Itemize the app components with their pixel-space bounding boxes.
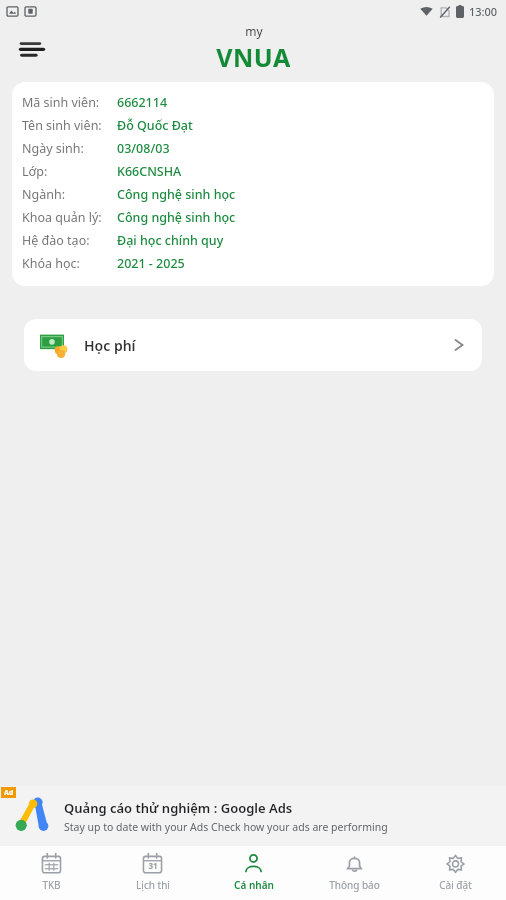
staticText: Quảng cáo thử nghiệm : Google Ads [64, 799, 293, 817]
staticText: Stay up to date with your Ads Check how … [64, 820, 388, 834]
staticText: K66CNSHA [117, 163, 182, 180]
staticText: Ad [4, 788, 14, 798]
staticText: Khoa quản lý: [22, 209, 102, 226]
staticText: 13:00 [469, 4, 498, 19]
staticText: Lớp: [22, 163, 48, 180]
button[interactable]: 31 [102, 846, 203, 900]
staticText: 6662114 [117, 94, 168, 111]
button[interactable]: TKB [0, 846, 102, 900]
button[interactable]: Học phí [24, 319, 482, 371]
button[interactable]: Thông báo [304, 846, 405, 900]
staticText: Ngày sinh: [22, 140, 84, 157]
staticText: Thông báo [329, 878, 380, 892]
staticText: Hệ đào tạo: [22, 232, 90, 249]
staticText: Khóa học: [22, 255, 80, 272]
button[interactable]: Ad [0, 786, 506, 846]
staticText: Lịch thi [136, 878, 170, 892]
staticText: Đỗ Quốc Đạt [117, 117, 193, 134]
button[interactable]: Menu [10, 27, 54, 71]
staticText: Cài đặt [439, 878, 472, 892]
staticText: Cá nhân [234, 878, 274, 892]
staticText: Ngành: [22, 186, 66, 203]
staticText: Đại học chính quy [117, 232, 224, 249]
staticText: TKB [42, 878, 61, 892]
staticText: 03/08/03 [117, 140, 170, 157]
staticText: Tên sinh viên: [22, 117, 102, 134]
staticText: Công nghệ sinh học [117, 186, 236, 203]
staticText: my [245, 23, 263, 39]
staticText: Công nghệ sinh học [117, 209, 236, 226]
staticText: VNUA [216, 40, 291, 74]
staticText: Học phí [84, 336, 136, 355]
staticText: 31 [148, 860, 158, 871]
button[interactable]: Cài đặt [405, 846, 506, 900]
staticText: Mã sinh viên: [22, 94, 100, 111]
staticText: 2021 - 2025 [117, 255, 185, 272]
button[interactable]: Cá nhân [203, 846, 304, 900]
